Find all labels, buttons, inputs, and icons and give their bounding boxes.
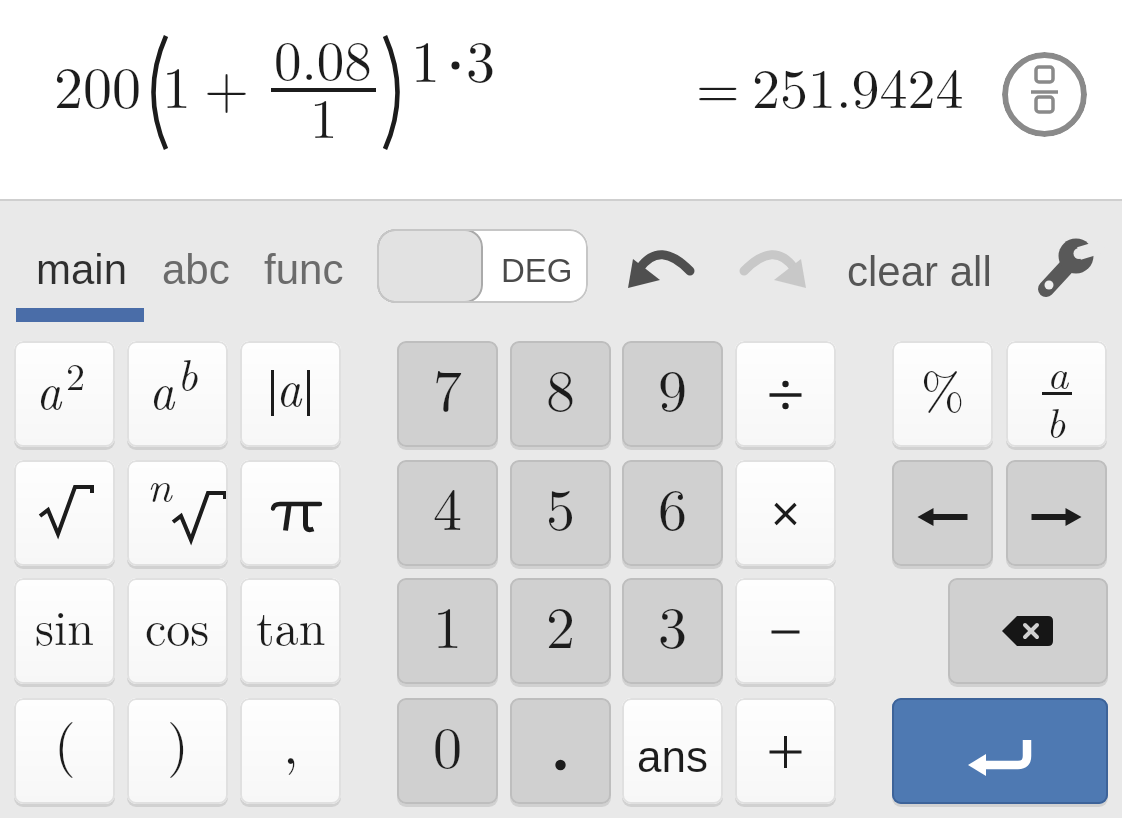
staticText: 1: [433, 583, 463, 665]
button[interactable]: clear all: [840, 242, 1000, 300]
staticText: abc: [162, 246, 230, 293]
button[interactable]: [240, 460, 341, 566]
staticText: 2: [66, 347, 86, 401]
button[interactable]: ans: [622, 698, 723, 804]
button[interactable]: ): [127, 698, 228, 804]
button[interactable]: main: [16, 240, 144, 322]
staticText: cos: [145, 591, 210, 659]
staticText: 251.9424: [752, 45, 964, 124]
staticText: 3: [466, 17, 496, 99]
staticText: tan: [256, 591, 326, 659]
staticText: +: [204, 43, 250, 125]
staticText: a: [276, 350, 302, 421]
staticText: 0.08: [274, 18, 372, 96]
button[interactable]: [510, 698, 611, 804]
staticText: ): [167, 701, 189, 780]
staticText: a: [36, 353, 62, 424]
button[interactable]: 6: [622, 460, 723, 566]
button[interactable]: abc: [155, 240, 240, 296]
staticText: b: [1046, 391, 1066, 447]
button[interactable]: 4: [397, 460, 498, 566]
button[interactable]: a: [14, 341, 115, 447]
staticText: sin: [35, 591, 94, 659]
button[interactable]: (: [14, 698, 115, 804]
staticText: =: [696, 45, 740, 124]
button[interactable]: 7: [397, 341, 498, 447]
staticText: n: [147, 460, 172, 514]
button[interactable]: [1006, 460, 1107, 566]
staticText: (: [54, 701, 76, 780]
button[interactable]: %: [892, 341, 993, 447]
staticText: 200: [54, 43, 142, 125]
button[interactable]: [948, 578, 1108, 684]
button[interactable]: DEG: [377, 229, 588, 303]
staticText: b: [177, 341, 198, 404]
button[interactable]: [14, 460, 115, 566]
button[interactable]: n: [127, 460, 228, 566]
staticText: 7: [433, 346, 463, 428]
button[interactable]: ,: [240, 698, 341, 804]
staticText: 4: [433, 465, 463, 547]
button[interactable]: 2: [510, 578, 611, 684]
button[interactable]: tan: [240, 578, 341, 684]
staticText: ans: [637, 732, 708, 781]
button[interactable]: [892, 460, 993, 566]
button[interactable]: 3: [622, 578, 723, 684]
staticText: main: [36, 246, 128, 293]
staticText: 6: [658, 465, 688, 547]
button[interactable]: [735, 460, 836, 566]
button[interactable]: a: [127, 341, 228, 447]
button[interactable]: [1002, 52, 1087, 137]
staticText: 3: [658, 583, 688, 665]
button[interactable]: 9: [622, 341, 723, 447]
staticText: a: [149, 353, 175, 424]
button[interactable]: [732, 238, 814, 298]
staticText: func: [264, 246, 344, 293]
staticText: %: [921, 351, 965, 425]
button[interactable]: 1: [397, 578, 498, 684]
button[interactable]: a: [1006, 341, 1107, 447]
staticText: clear all: [847, 248, 992, 295]
button[interactable]: cos: [127, 578, 228, 684]
staticText: 2: [546, 583, 576, 665]
staticText: a: [1047, 342, 1069, 401]
button[interactable]: [735, 341, 836, 447]
staticText: 8: [546, 346, 576, 428]
button[interactable]: 0: [397, 698, 498, 804]
button[interactable]: 8: [510, 341, 611, 447]
button[interactable]: a: [240, 341, 341, 447]
button[interactable]: [620, 238, 702, 298]
button[interactable]: sin: [14, 578, 115, 684]
staticText: 1: [310, 76, 338, 154]
button[interactable]: [735, 578, 836, 684]
staticText: 1: [162, 43, 192, 125]
button[interactable]: [735, 698, 836, 804]
staticText: 1: [411, 17, 441, 99]
staticText: 9: [658, 346, 688, 428]
button[interactable]: [892, 698, 1108, 804]
staticText: 0: [433, 703, 463, 785]
staticText: 5: [546, 465, 576, 547]
button[interactable]: func: [256, 240, 351, 296]
button[interactable]: 5: [510, 460, 611, 566]
staticText: ,: [283, 701, 299, 780]
staticText: DEG: [501, 252, 573, 289]
button[interactable]: [1032, 232, 1102, 302]
